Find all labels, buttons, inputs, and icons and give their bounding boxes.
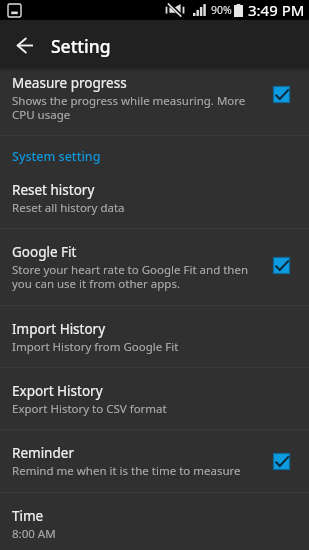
staticText: 90% <box>211 3 232 17</box>
button[interactable]: Measure progress <box>0 60 309 135</box>
staticText: 8:00 AM <box>12 526 56 542</box>
button[interactable]: Toggle <box>273 257 290 274</box>
staticText: Reminder <box>12 444 74 462</box>
staticText: Shows the progress while measuring. More… <box>12 93 265 123</box>
staticText: Import History <box>12 320 106 338</box>
staticText: Measure progress <box>12 74 127 92</box>
staticText: Reset history <box>12 181 95 199</box>
button[interactable]: Back <box>8 28 41 61</box>
staticText: Export History <box>12 382 103 400</box>
staticText: Export History to CSV format <box>12 401 167 417</box>
button[interactable]: Reminder <box>0 430 309 492</box>
button[interactable]: Google Fit <box>0 229 309 305</box>
button[interactable]: Toggle <box>273 86 290 103</box>
button[interactable]: Reset history <box>0 167 309 228</box>
staticText: Setting <box>51 34 111 58</box>
button[interactable]: Import History <box>0 306 309 367</box>
staticText: System setting <box>12 148 101 165</box>
staticText: Reset all history data <box>12 200 125 216</box>
staticText: 3:49 PM <box>248 0 305 20</box>
button[interactable]: Toggle <box>273 453 290 470</box>
staticText: Store your heart rate to Google Fit and … <box>12 262 265 292</box>
button[interactable]: Export History <box>0 368 309 429</box>
staticText: Google Fit <box>12 243 77 261</box>
staticText: Remind me when it is the time to measure <box>12 463 241 479</box>
button[interactable]: Time <box>0 493 309 550</box>
staticText: Time <box>12 507 44 525</box>
staticText: Import History from Google Fit <box>12 339 179 355</box>
